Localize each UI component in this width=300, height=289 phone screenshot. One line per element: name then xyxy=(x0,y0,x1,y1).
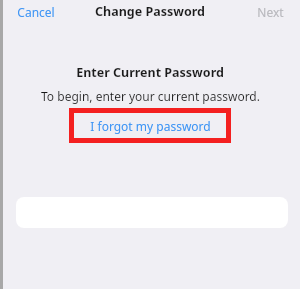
staticText: Change Password xyxy=(95,3,205,20)
button[interactable]: Next xyxy=(254,2,287,22)
staticText: Enter Current Password xyxy=(76,64,224,81)
staticText: Next xyxy=(257,4,284,20)
button[interactable]: Cancel xyxy=(14,2,58,22)
staticText: Cancel xyxy=(17,4,55,20)
staticText: To begin, enter your current password. xyxy=(41,88,260,104)
button[interactable]: I forgot my password xyxy=(74,113,226,138)
staticText: I forgot my password xyxy=(90,118,211,134)
